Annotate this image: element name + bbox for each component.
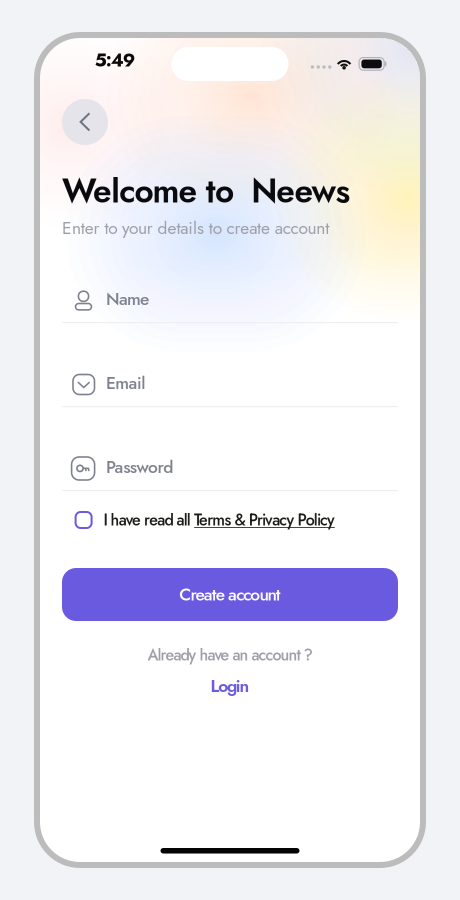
staticText: Email	[106, 370, 145, 395]
button[interactable]: Back	[62, 99, 108, 145]
staticText: Already have an account ?	[147, 643, 312, 666]
staticText: Enter to your details to create account	[62, 215, 329, 240]
staticText: Create account	[179, 582, 281, 607]
button[interactable]: Login	[62, 675, 398, 697]
staticText: Name	[106, 286, 149, 311]
button[interactable]: Email	[62, 363, 398, 447]
button[interactable]: Create account	[62, 568, 398, 621]
staticText: 5:49	[95, 46, 135, 73]
staticText: I have read all Terms & Privacy Policy	[103, 508, 335, 531]
button[interactable]: I have read all Terms & Privacy Policy	[62, 504, 398, 536]
staticText: Welcome to Neews	[62, 167, 351, 215]
staticText: Password	[106, 454, 173, 479]
staticText: Login	[210, 673, 250, 698]
button[interactable]: Name	[62, 279, 398, 363]
button[interactable]: Password	[62, 447, 398, 531]
